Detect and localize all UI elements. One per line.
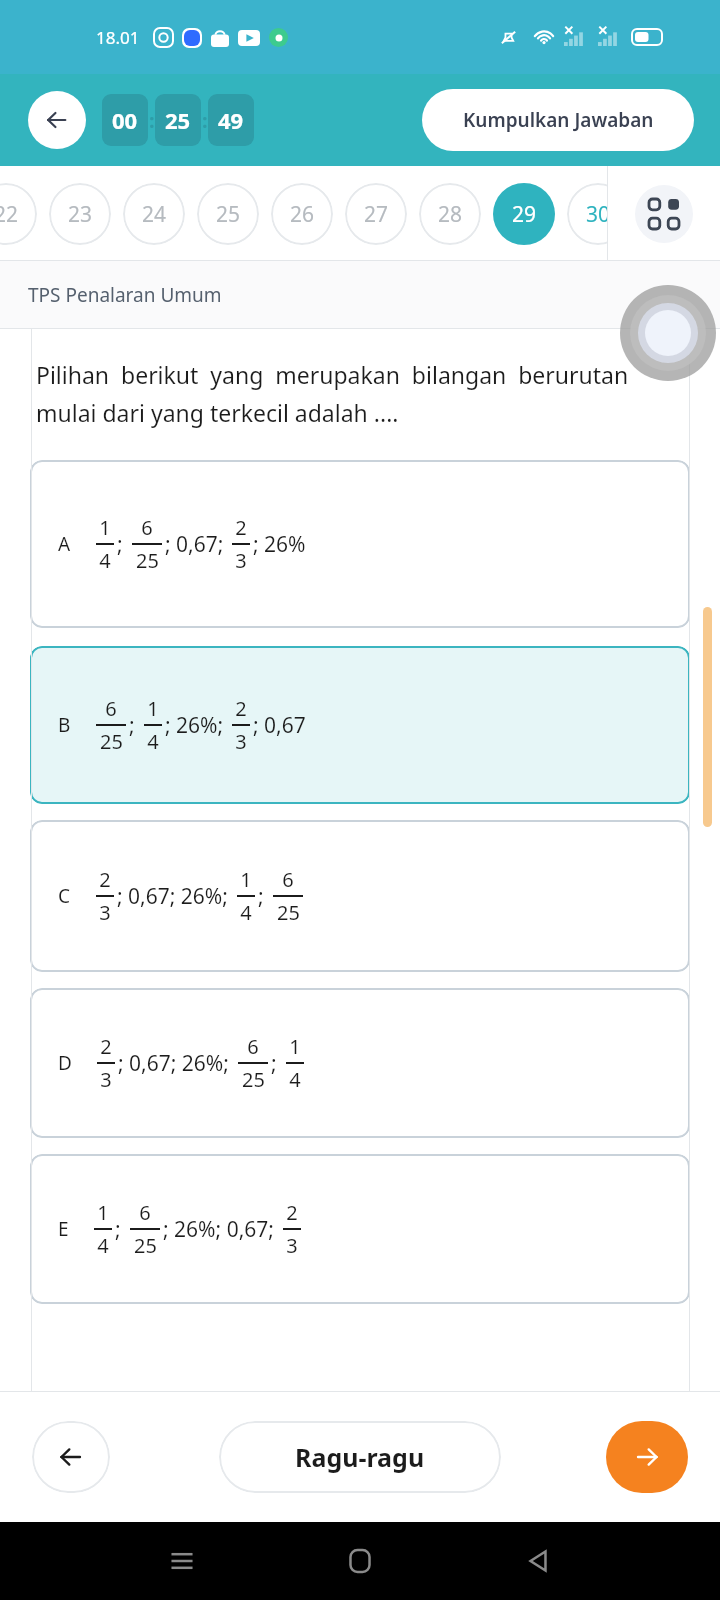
staticText: 1: [289, 1033, 301, 1060]
button[interactable]: D: [30, 988, 690, 1138]
staticText: 4: [99, 547, 111, 574]
staticText: 25: [134, 1232, 157, 1259]
staticText: 4: [97, 1232, 109, 1259]
staticText: Pilihan berikut yang merupakan bilangan …: [36, 359, 629, 390]
button[interactable]: 24: [123, 183, 185, 245]
button[interactable]: Home: [343, 1544, 377, 1578]
staticText: 2: [235, 514, 247, 541]
staticText: 24: [142, 200, 167, 229]
staticText: Kumpulkan Jawaban: [463, 107, 654, 133]
staticText: 4: [147, 728, 159, 755]
button[interactable]: Question grid: [635, 185, 693, 243]
staticText: 3: [286, 1232, 298, 1259]
staticText: mulai dari yang terkecil adalah ....: [36, 397, 399, 428]
button[interactable]: Previous question: [32, 1421, 110, 1493]
staticText: 3: [99, 899, 111, 926]
staticText: 4: [240, 899, 252, 926]
staticText: B: [58, 712, 71, 738]
staticText: 4: [289, 1066, 301, 1093]
staticText: 6: [141, 514, 153, 541]
button[interactable]: 30: [567, 183, 629, 245]
button[interactable]: A: [30, 460, 690, 628]
staticText: 6: [247, 1033, 259, 1060]
button[interactable]: 23: [49, 183, 111, 245]
staticText: 3: [100, 1066, 112, 1093]
staticText: ; 0,67; 26%;: [118, 1049, 235, 1078]
button[interactable]: C: [30, 820, 690, 972]
staticText: 23: [68, 200, 93, 229]
staticText: 1: [240, 866, 252, 893]
staticText: ;: [258, 882, 270, 911]
staticText: 25: [136, 547, 159, 574]
staticText: ; 26%;: [165, 711, 229, 740]
staticText: 1: [97, 1199, 109, 1226]
staticText: ;: [271, 1049, 283, 1078]
staticText: 25: [242, 1066, 265, 1093]
staticText: 30: [586, 200, 611, 229]
staticText: 6: [139, 1199, 151, 1226]
staticText: 22: [0, 200, 19, 229]
button[interactable]: Ragu-ragu: [219, 1421, 501, 1493]
button[interactable]: 27: [345, 183, 407, 245]
staticText: 2: [100, 1033, 112, 1060]
staticText: 2: [286, 1199, 298, 1226]
staticText: 2: [99, 866, 111, 893]
staticText: ;: [115, 1215, 127, 1244]
button[interactable]: 26: [271, 183, 333, 245]
button[interactable]: Back: [28, 91, 86, 149]
staticText: 3: [235, 728, 247, 755]
staticText: 49: [218, 105, 244, 135]
staticText: 27: [364, 200, 389, 229]
staticText: 25: [165, 105, 191, 135]
staticText: 29: [512, 200, 537, 229]
button[interactable]: 28: [419, 183, 481, 245]
staticText: 26: [290, 200, 315, 229]
button[interactable]: Next question: [606, 1421, 688, 1493]
staticText: 2: [235, 695, 247, 722]
staticText: ; 0,67; 26%;: [117, 882, 234, 911]
staticText: 3: [235, 547, 247, 574]
button[interactable]: Back: [521, 1544, 555, 1578]
staticText: D: [58, 1050, 72, 1076]
button[interactable]: 25: [197, 183, 259, 245]
staticText: C: [58, 883, 71, 909]
staticText: 18.01: [96, 26, 140, 49]
staticText: 6: [282, 866, 294, 893]
staticText: :: [202, 107, 208, 134]
staticText: ; 0,67: [253, 711, 306, 740]
staticText: 25: [100, 728, 123, 755]
staticText: ; 26%; 0,67;: [163, 1215, 280, 1244]
staticText: 1: [147, 695, 159, 722]
staticText: :: [149, 107, 155, 134]
staticText: Ragu-ragu: [295, 1440, 425, 1474]
staticText: E: [58, 1216, 69, 1242]
button[interactable]: E: [30, 1154, 690, 1304]
staticText: ;: [129, 711, 141, 740]
staticText: ;: [117, 530, 129, 559]
button[interactable]: Kumpulkan Jawaban: [422, 89, 694, 151]
staticText: 28: [438, 200, 463, 229]
button[interactable]: 29: [493, 183, 555, 245]
staticText: 25: [216, 200, 241, 229]
staticText: A: [58, 531, 71, 557]
staticText: ; 0,67;: [165, 530, 229, 559]
staticText: 6: [105, 695, 117, 722]
staticText: 1: [99, 514, 111, 541]
button[interactable]: Recents: [165, 1544, 199, 1578]
button[interactable]: 22: [0, 183, 37, 245]
staticText: 00: [112, 105, 138, 135]
staticText: 25: [277, 899, 300, 926]
staticText: TPS Penalaran Umum: [28, 282, 222, 308]
staticText: ; 26%: [253, 530, 306, 559]
button[interactable]: B: [30, 646, 690, 804]
